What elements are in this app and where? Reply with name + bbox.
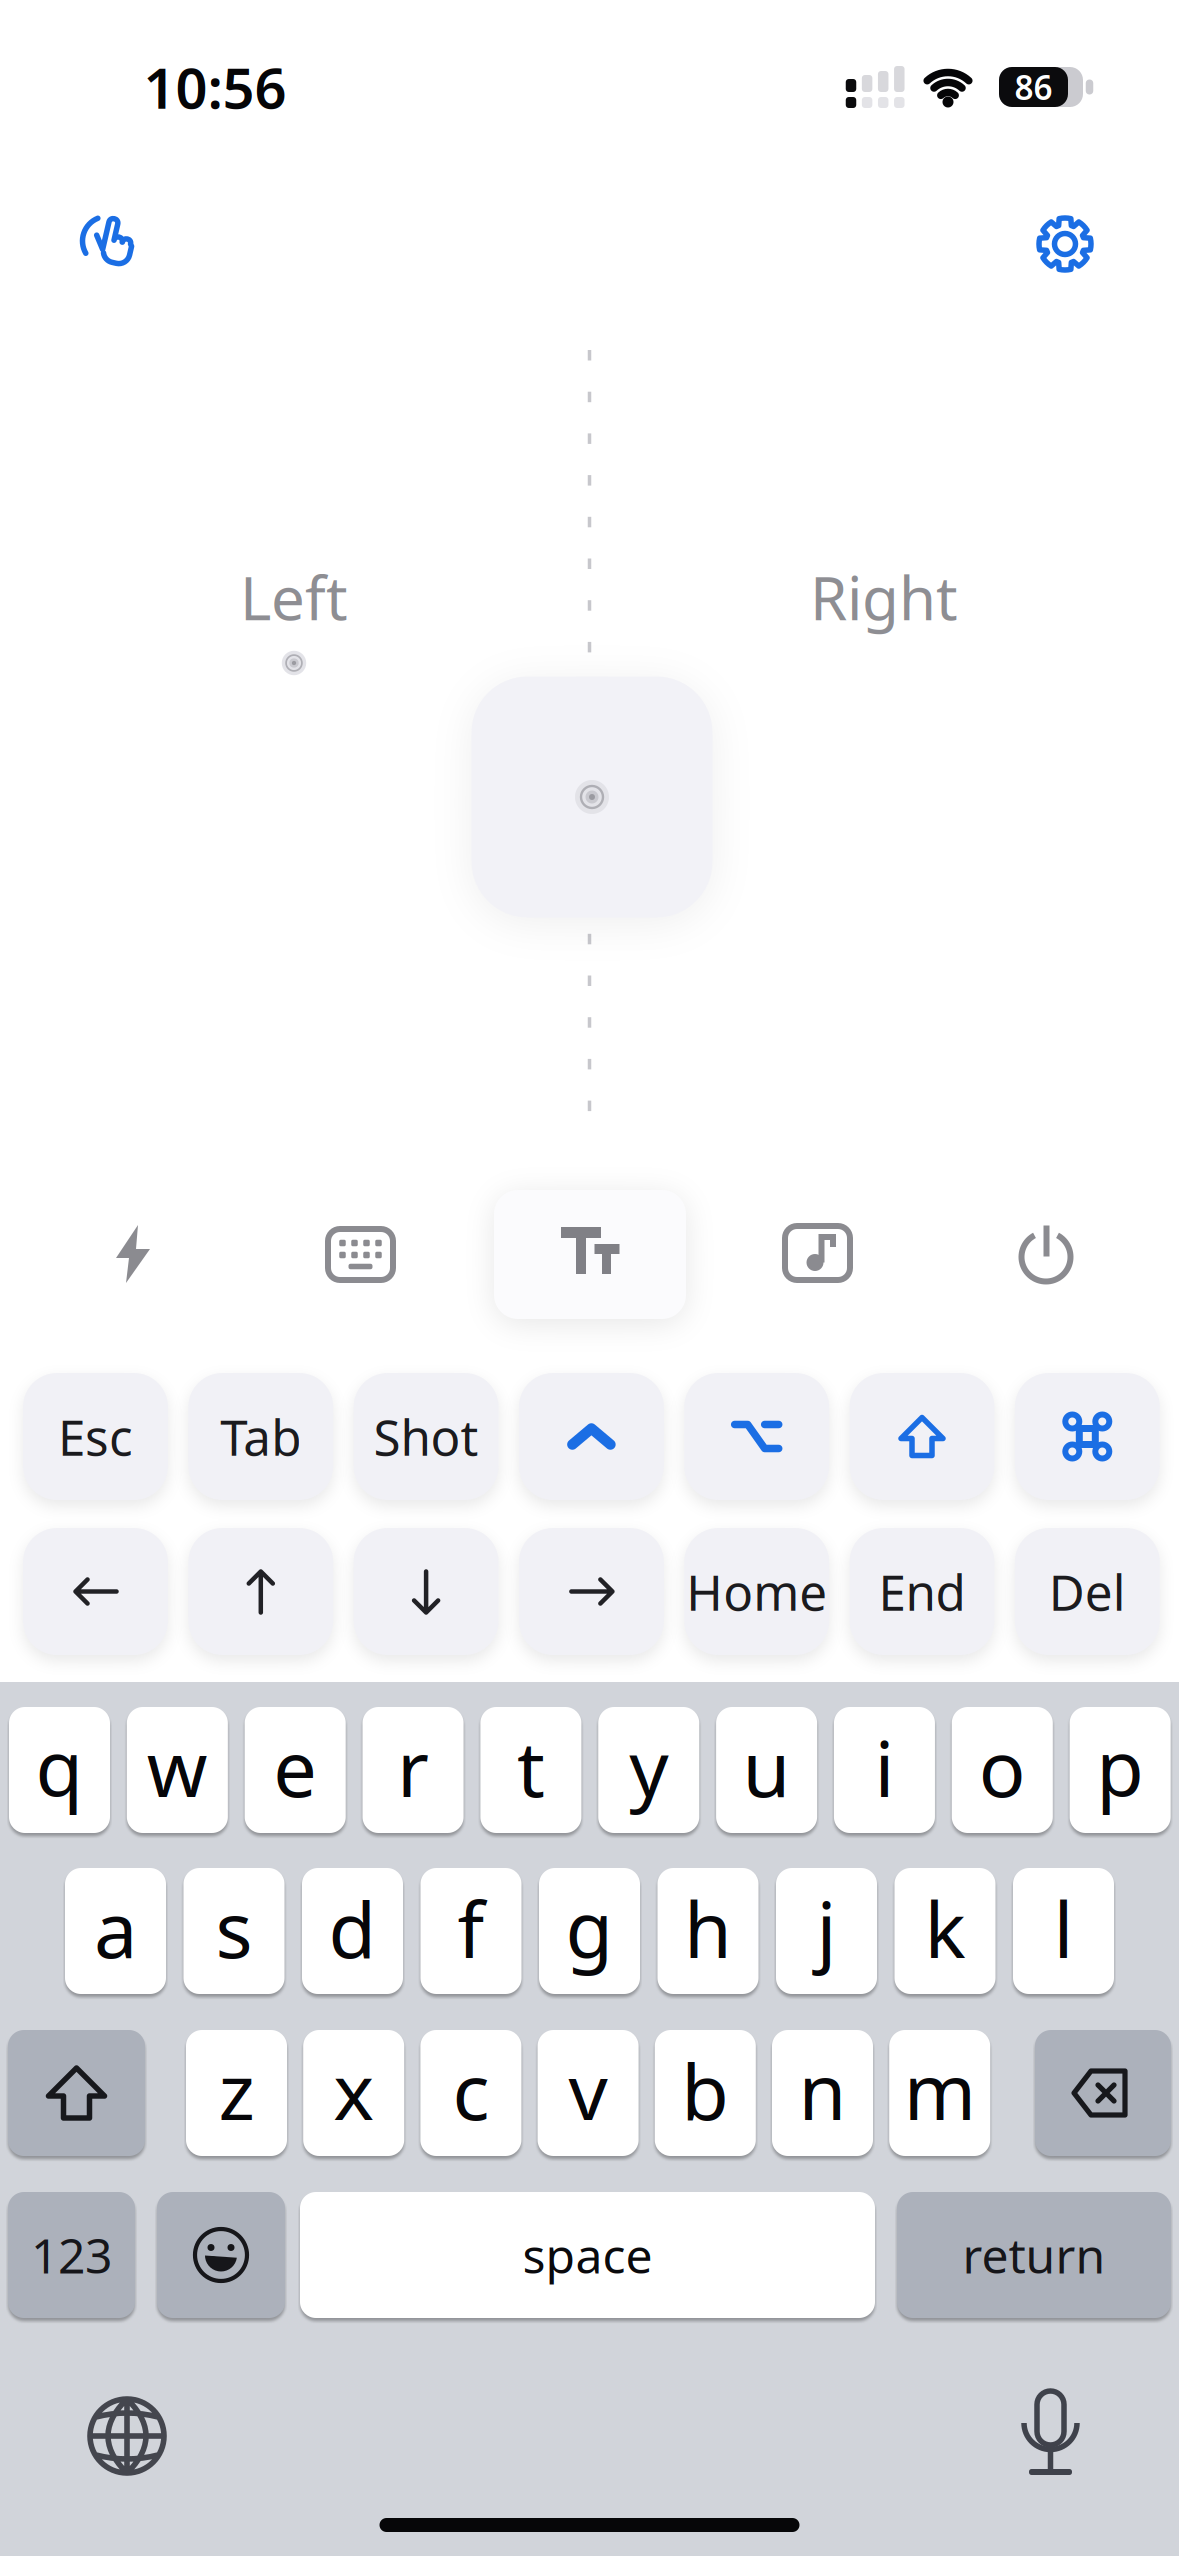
button[interactable]: Shift xyxy=(849,1373,994,1500)
staticText: u xyxy=(743,1716,791,1818)
button[interactable]: m xyxy=(889,2030,990,2156)
button[interactable]: Esc xyxy=(23,1373,168,1500)
button[interactable]: Left arrow xyxy=(23,1528,168,1655)
staticText: x xyxy=(333,2039,374,2141)
button[interactable]: c xyxy=(420,2030,521,2156)
button[interactable]: return xyxy=(897,2192,1171,2318)
button[interactable]: End xyxy=(849,1528,994,1655)
staticText: s xyxy=(215,1877,252,1979)
button[interactable]: Shift xyxy=(8,2030,145,2156)
staticText: z xyxy=(218,2039,254,2141)
staticText: r xyxy=(397,1716,429,1818)
button[interactable]: Del xyxy=(1015,1528,1160,1655)
staticText: 123 xyxy=(31,2223,112,2287)
button[interactable]: Option xyxy=(684,1373,829,1500)
staticText: Esc xyxy=(58,1404,133,1469)
button[interactable]: q xyxy=(9,1707,110,1833)
staticText: l xyxy=(1053,1877,1073,1979)
button[interactable]: Emoji xyxy=(157,2192,285,2318)
button[interactable]: Shot xyxy=(354,1373,499,1500)
button[interactable]: Down arrow xyxy=(354,1528,499,1655)
button[interactable]: Right click xyxy=(770,517,998,677)
button[interactable]: Text input xyxy=(494,1190,686,1319)
button[interactable]: Keyboard xyxy=(307,1208,413,1300)
button[interactable]: k xyxy=(894,1868,995,1994)
staticText: o xyxy=(979,1716,1026,1818)
staticText: j xyxy=(816,1877,836,1979)
button[interactable]: 123 xyxy=(8,2192,135,2318)
staticText: Home xyxy=(686,1559,827,1624)
button[interactable]: b xyxy=(655,2030,756,2156)
button[interactable]: Left click xyxy=(200,517,388,677)
button[interactable]: s xyxy=(183,1868,284,1994)
staticText: i xyxy=(874,1716,894,1818)
staticText: a xyxy=(94,1877,137,1979)
button[interactable]: d xyxy=(302,1868,403,1994)
staticText: v xyxy=(569,2039,608,2141)
staticText: c xyxy=(452,2039,489,2141)
staticText: Tab xyxy=(220,1404,301,1469)
button[interactable]: Pointer mode xyxy=(81,211,145,275)
button[interactable]: z xyxy=(186,2030,287,2156)
staticText: 86 xyxy=(1014,65,1052,109)
button[interactable]: Dictation xyxy=(1003,2374,1097,2492)
button[interactable]: u xyxy=(716,1707,817,1833)
button[interactable]: f xyxy=(420,1868,521,1994)
staticText: space xyxy=(522,2223,652,2287)
button[interactable]: o xyxy=(952,1707,1053,1833)
staticText: k xyxy=(924,1877,965,1979)
button[interactable]: g xyxy=(539,1868,640,1994)
staticText: End xyxy=(878,1559,965,1624)
button[interactable]: Media xyxy=(764,1205,870,1300)
button[interactable]: Switch keyboard xyxy=(73,2382,181,2490)
staticText: Del xyxy=(1049,1559,1126,1624)
button[interactable]: p xyxy=(1070,1707,1171,1833)
button[interactable]: Shortcuts xyxy=(96,1205,170,1303)
staticText: e xyxy=(273,1716,317,1818)
staticText: 10:56 xyxy=(143,50,286,124)
staticText: n xyxy=(798,2039,846,2141)
staticText: g xyxy=(565,1877,613,1979)
staticText: h xyxy=(684,1877,732,1979)
staticText: Shot xyxy=(374,1404,479,1469)
button[interactable]: Control xyxy=(519,1373,664,1500)
button[interactable]: e xyxy=(245,1707,346,1833)
button[interactable]: i xyxy=(834,1707,935,1833)
button[interactable]: y xyxy=(598,1707,699,1833)
button[interactable]: Delete xyxy=(1035,2030,1171,2156)
staticText: m xyxy=(904,2039,976,2141)
button[interactable]: n xyxy=(772,2030,873,2156)
button[interactable]: x xyxy=(303,2030,404,2156)
button[interactable]: t xyxy=(480,1707,581,1833)
staticText: b xyxy=(681,2039,729,2141)
staticText: t xyxy=(517,1716,545,1818)
button[interactable]: h xyxy=(657,1868,758,1994)
button[interactable]: r xyxy=(362,1707,463,1833)
button[interactable]: Right arrow xyxy=(519,1528,664,1655)
button[interactable]: a xyxy=(65,1868,166,1994)
button[interactable]: Tab xyxy=(188,1373,333,1500)
button[interactable]: Home xyxy=(684,1528,829,1655)
button[interactable]: Trackpad xyxy=(471,676,712,917)
staticText: Left xyxy=(240,557,348,637)
button[interactable]: space xyxy=(300,2192,875,2318)
button[interactable]: Settings xyxy=(1033,212,1097,276)
staticText: Right xyxy=(810,557,958,637)
button[interactable]: Command xyxy=(1015,1373,1160,1500)
staticText: d xyxy=(328,1877,376,1979)
button[interactable]: v xyxy=(538,2030,639,2156)
staticText: q xyxy=(35,1716,83,1818)
button[interactable]: l xyxy=(1013,1868,1114,1994)
staticText: p xyxy=(1096,1716,1144,1818)
button[interactable]: w xyxy=(127,1707,228,1833)
staticText: return xyxy=(962,2223,1105,2287)
staticText: f xyxy=(457,1877,484,1979)
button[interactable]: Power xyxy=(999,1207,1093,1303)
staticText: w xyxy=(147,1716,208,1818)
staticText: y xyxy=(629,1716,668,1818)
button[interactable]: Up arrow xyxy=(188,1528,333,1655)
button[interactable]: j xyxy=(776,1868,877,1994)
